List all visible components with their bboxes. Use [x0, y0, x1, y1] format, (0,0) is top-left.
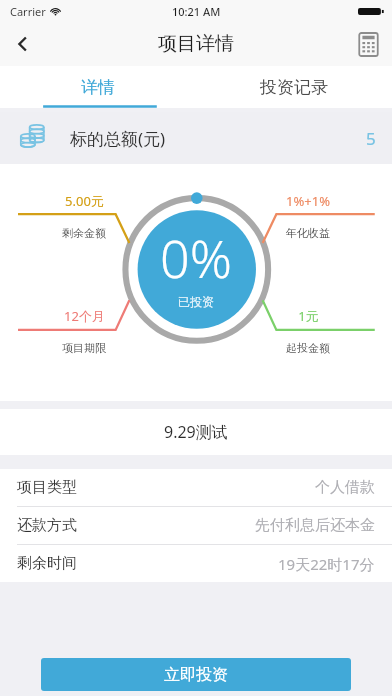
staticText: 标的总额(元) [70, 127, 166, 150]
staticText: 详情 [81, 77, 115, 98]
staticText: 1元 [298, 307, 319, 325]
staticText: 还款方式 [17, 516, 77, 535]
staticText: 剩余时间 [17, 554, 77, 573]
staticText: 投资记录 [260, 77, 328, 98]
staticText: 19天22时17分 [278, 554, 375, 574]
button[interactable]: 投资记录 [196, 66, 392, 108]
staticText: 1%+1% [286, 192, 330, 210]
staticText: 年化收益 [286, 226, 330, 240]
button[interactable]: 详情 [0, 66, 196, 108]
staticText: 项目类型 [17, 478, 77, 497]
staticText: 项目期限 [62, 341, 106, 355]
button[interactable]: Calculator [344, 22, 392, 66]
staticText: 立即投资 [164, 665, 228, 685]
button[interactable]: 立即投资 [41, 658, 351, 691]
staticText: 剩余金额 [62, 226, 106, 240]
staticText: 10:21 AM [172, 4, 221, 19]
staticText: 项目详情 [158, 32, 234, 56]
staticText: 5 [366, 127, 376, 150]
staticText: 0% [160, 222, 232, 293]
staticText: 个人借款 [315, 478, 375, 497]
button[interactable]: 标的总额(元) [0, 112, 392, 164]
staticText: 先付利息后还本金 [255, 516, 375, 535]
staticText: 12个月 [64, 307, 105, 325]
staticText: 起投金额 [286, 341, 330, 355]
button[interactable]: 剩余时间 [0, 545, 392, 582]
button[interactable]: 还款方式 [0, 507, 392, 544]
button[interactable]: 9.29测试 [0, 409, 392, 455]
button[interactable]: 项目类型 [0, 469, 392, 506]
staticText: 9.29测试 [164, 421, 228, 443]
staticText: Carrier [10, 4, 46, 19]
staticText: 已投资 [178, 294, 214, 309]
button[interactable]: Back [0, 22, 46, 66]
staticText: 5.00元 [65, 192, 104, 210]
